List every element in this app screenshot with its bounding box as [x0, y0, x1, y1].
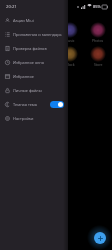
staticText: Notes: [9, 62, 19, 67]
button[interactable]: Chat: [0, 22, 28, 44]
button[interactable]: Проверка файлов: [0, 41, 68, 55]
button[interactable]: [50, 101, 64, 108]
staticText: Акции Miui: [13, 18, 34, 23]
button[interactable]: Clock: [56, 46, 84, 68]
button[interactable]: Store: [84, 46, 112, 68]
staticText: Избранное окно: [13, 60, 45, 65]
button[interactable]: Photos: [84, 22, 112, 44]
button[interactable]: Настройки: [0, 111, 68, 125]
button[interactable]: Избранное окно: [0, 55, 68, 69]
staticText: Files: [38, 62, 46, 67]
button[interactable]: Избранное: [0, 69, 68, 83]
button[interactable]: Notes: [0, 46, 28, 68]
staticText: 20:21: [6, 4, 17, 10]
staticText: Clock: [66, 62, 75, 67]
staticText: Темная тема: [13, 102, 38, 107]
staticText: Приложения и календарь: [13, 32, 62, 37]
staticText: 85%: [93, 4, 101, 9]
button[interactable]: Music: [56, 22, 84, 44]
button[interactable]: Files: [28, 46, 56, 68]
staticText: Music: [65, 38, 75, 43]
button[interactable]: Приложения и календарь: [0, 27, 68, 41]
staticText: Личные файлы: [13, 88, 42, 93]
staticText: Настройки: [13, 116, 34, 121]
button[interactable]: Акции Miui: [0, 13, 68, 27]
staticText: Photos: [92, 38, 104, 43]
staticText: Избранное: [13, 74, 34, 79]
staticText: Store: [94, 62, 103, 67]
button[interactable]: Темная тема: [0, 97, 68, 111]
staticText: Проверка файлов: [13, 46, 47, 51]
button[interactable]: Add: [94, 232, 106, 244]
button[interactable]: Mail: [28, 22, 56, 44]
button[interactable]: Личные файлы: [0, 83, 68, 97]
